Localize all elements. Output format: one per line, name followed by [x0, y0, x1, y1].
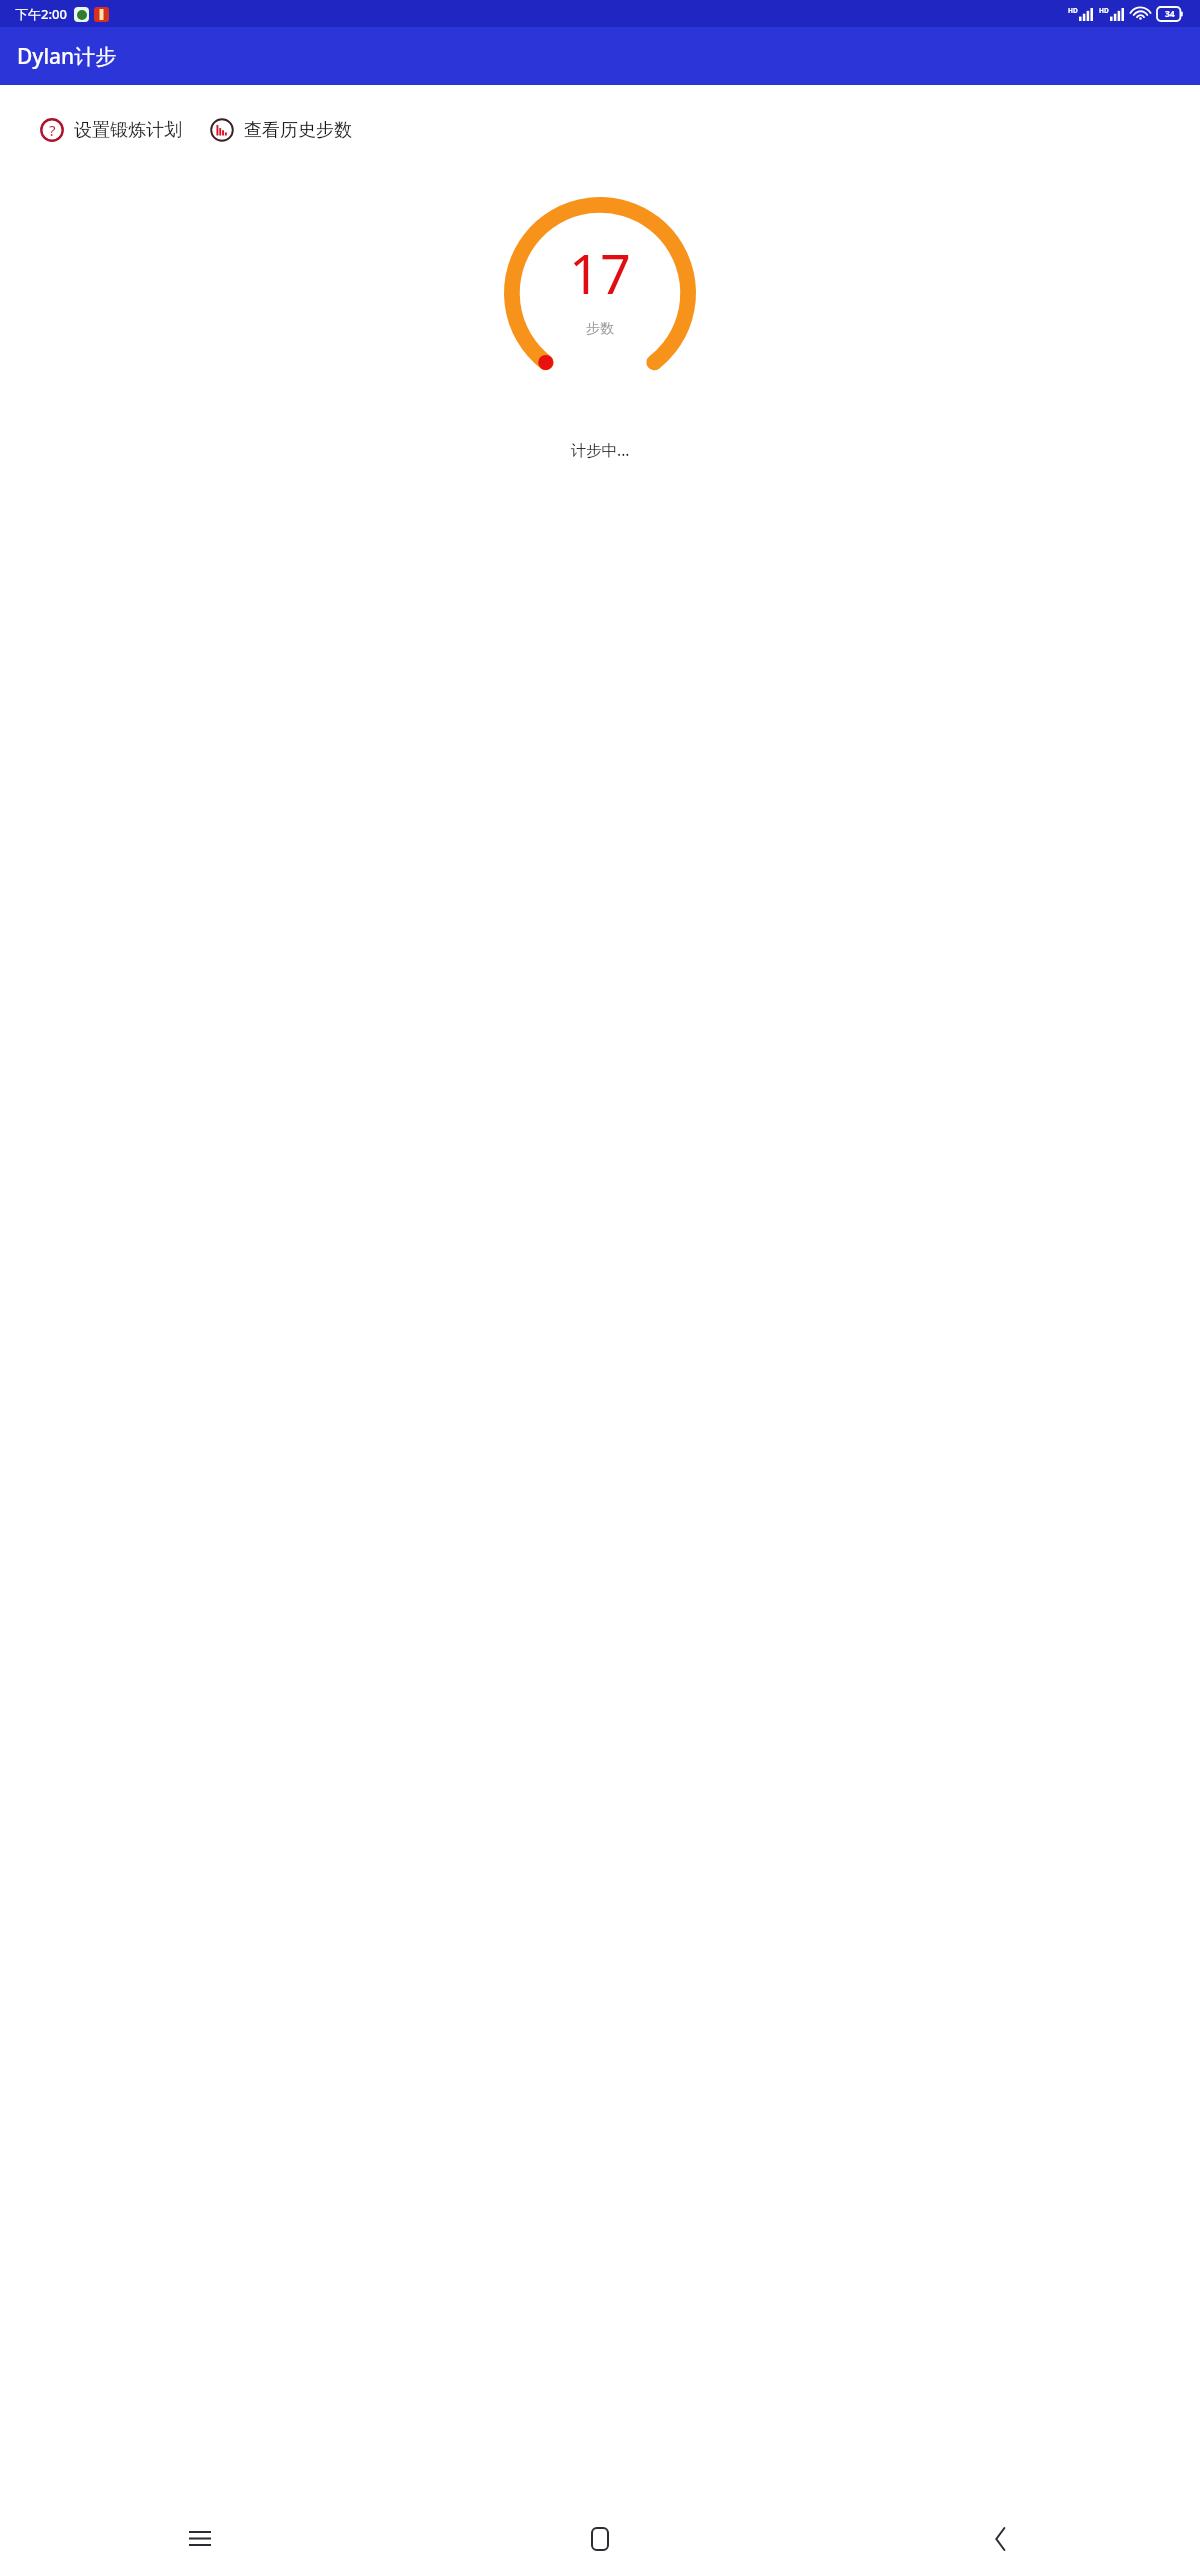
staticText: HD	[1099, 6, 1109, 15]
staticText: HD	[1068, 6, 1078, 15]
staticText: 下午2:00	[15, 5, 67, 23]
button[interactable]: Home	[400, 2519, 800, 2558]
staticText: 设置锻炼计划	[74, 119, 182, 142]
button[interactable]: 查看历史步数	[210, 118, 352, 142]
button[interactable]: Recent apps	[0, 2519, 400, 2558]
staticText: 计步中...	[0, 439, 1200, 460]
staticText: 17	[569, 236, 631, 310]
staticText: 34	[1165, 8, 1175, 20]
staticText: Dylan计步	[17, 42, 117, 71]
staticText: 步数	[586, 320, 614, 338]
staticText: 查看历史步数	[244, 119, 352, 142]
staticText: ?	[49, 120, 56, 140]
button[interactable]: Back	[800, 2519, 1200, 2558]
button[interactable]: ?	[40, 118, 182, 142]
